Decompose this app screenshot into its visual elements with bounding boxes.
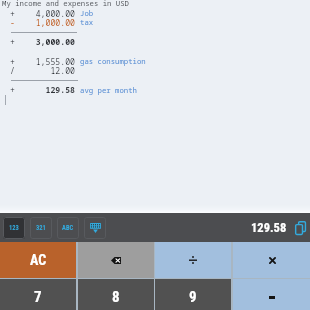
button[interactable]: Multiply bbox=[233, 242, 310, 278]
staticText: Job bbox=[80, 8, 94, 18]
staticText: + bbox=[10, 56, 15, 67]
staticText: tax bbox=[80, 17, 94, 27]
button[interactable]: Hide keyboard bbox=[84, 217, 106, 239]
staticText: avg per month bbox=[80, 85, 137, 95]
button[interactable]: ABC bbox=[57, 217, 79, 239]
staticText: 8 bbox=[112, 288, 120, 306]
staticText: / bbox=[10, 65, 15, 76]
staticText: 129.58 bbox=[0, 84, 75, 95]
staticText: 3,000.00 bbox=[0, 36, 75, 47]
staticText: + bbox=[10, 36, 15, 47]
staticText: 321 bbox=[36, 224, 46, 232]
staticText: 9 bbox=[189, 288, 197, 306]
button[interactable]: 9 bbox=[155, 279, 231, 310]
staticText: 12.00 bbox=[0, 65, 75, 76]
staticText: 4,000.00 bbox=[0, 8, 75, 19]
button[interactable]: 8 bbox=[78, 279, 154, 310]
staticText: 129.58 bbox=[251, 220, 287, 235]
button[interactable]: 123 bbox=[3, 217, 25, 239]
button[interactable]: Minus bbox=[233, 279, 310, 310]
staticText: gas consumption bbox=[80, 56, 146, 66]
button[interactable]: 321 bbox=[30, 217, 52, 239]
staticText: 1,000.00 bbox=[0, 17, 75, 28]
staticText: 123 bbox=[9, 224, 19, 232]
staticText: AC bbox=[30, 252, 47, 268]
staticText: + bbox=[10, 8, 15, 19]
staticText: My income and expenses in USD bbox=[2, 0, 129, 8]
button[interactable]: Copy bbox=[292, 218, 308, 238]
staticText: 1,555.00 bbox=[0, 56, 75, 67]
button[interactable]: 7 bbox=[0, 279, 76, 310]
staticText: + bbox=[10, 84, 15, 95]
staticText: - bbox=[10, 17, 15, 28]
button[interactable]: Divide bbox=[155, 242, 231, 278]
staticText: 7 bbox=[34, 288, 42, 306]
button[interactable]: AC bbox=[0, 242, 76, 278]
button[interactable]: Backspace bbox=[78, 242, 154, 278]
staticText: ABC bbox=[62, 224, 74, 232]
